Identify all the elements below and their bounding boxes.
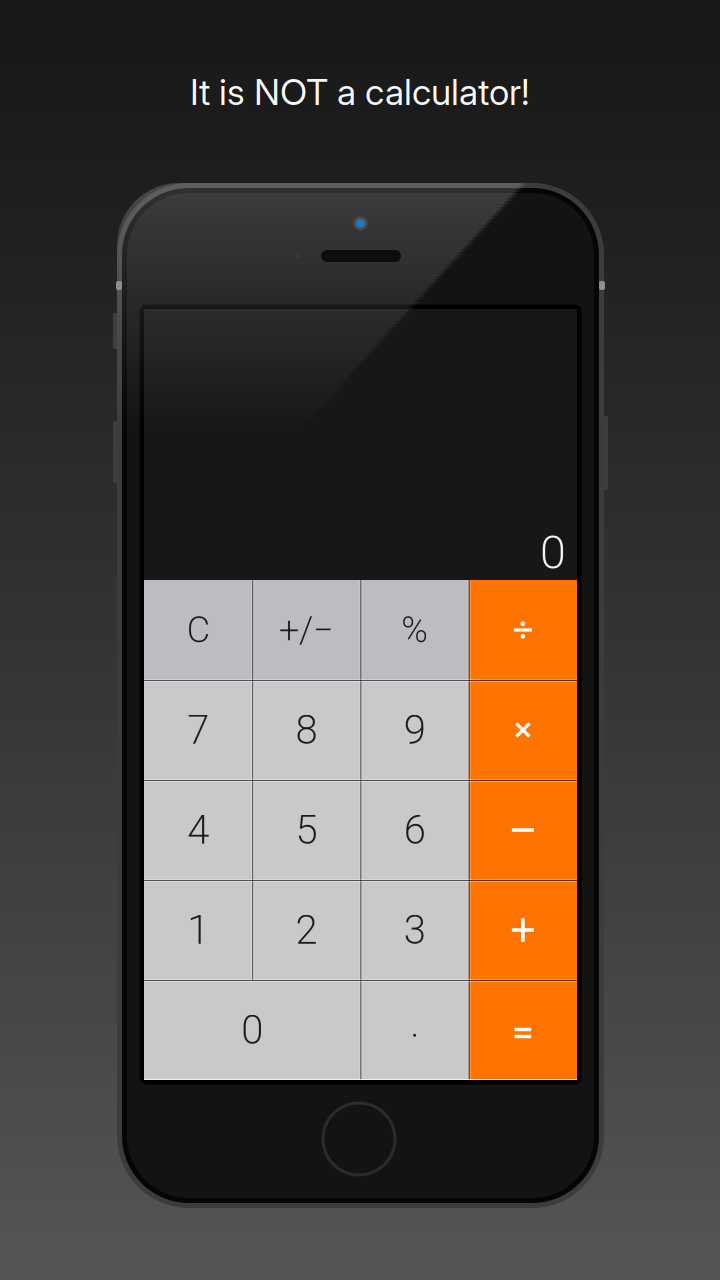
button[interactable]: 5 [252, 780, 360, 880]
button[interactable]: 6 [360, 780, 469, 880]
staticText: 4 [187, 807, 209, 853]
button[interactable]: Divide [469, 580, 577, 680]
button[interactable]: 7 [144, 680, 252, 780]
button[interactable]: . [360, 980, 469, 1080]
staticText: 6 [404, 807, 426, 853]
button[interactable]: Multiply [469, 680, 577, 780]
staticText: 2 [295, 907, 317, 953]
button[interactable]: +/− [252, 580, 360, 680]
staticText: 0 [241, 1007, 263, 1053]
staticText: 7 [187, 707, 209, 753]
staticText: % [401, 609, 428, 651]
button[interactable]: 9 [360, 680, 469, 780]
staticText: 5 [295, 807, 317, 853]
button[interactable]: Subtract [469, 780, 577, 880]
staticText: 3 [404, 907, 426, 953]
staticText: 8 [295, 707, 317, 753]
button[interactable]: 1 [144, 880, 252, 980]
button[interactable]: C [144, 580, 252, 680]
button[interactable]: 8 [252, 680, 360, 780]
staticText: +/− [279, 609, 334, 651]
staticText: It is NOT a calculator! [190, 70, 530, 114]
staticText: C [187, 609, 210, 651]
button[interactable]: 3 [360, 880, 469, 980]
button[interactable]: 0 [144, 980, 360, 1080]
staticText: 0 [540, 525, 566, 580]
button[interactable]: 2 [252, 880, 360, 980]
staticText: 9 [404, 707, 426, 753]
button[interactable]: % [360, 580, 469, 680]
button[interactable]: 4 [144, 780, 252, 880]
button[interactable]: Add [469, 880, 577, 980]
staticText: 1 [187, 907, 209, 953]
staticText: . [410, 1000, 419, 1046]
button[interactable]: Equals [469, 980, 577, 1080]
